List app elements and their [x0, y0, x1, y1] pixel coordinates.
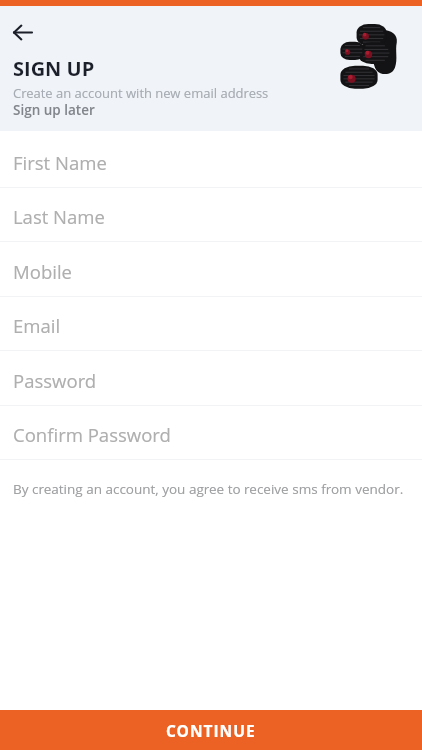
- button[interactable]: First Name: [0, 131, 422, 188]
- staticText: Password: [13, 368, 97, 393]
- staticText: Email: [13, 313, 61, 338]
- staticText: Sign up later: [13, 101, 95, 119]
- button[interactable]: Sign up later: [13, 101, 95, 119]
- button[interactable]: Last Name: [0, 188, 422, 242]
- staticText: By creating an account, you agree to rec…: [13, 480, 404, 498]
- button[interactable]: Confirm Password: [0, 406, 422, 460]
- staticText: Create an account with new email address: [13, 84, 269, 102]
- button[interactable]: Password: [0, 351, 422, 406]
- staticText: SIGN UP: [13, 55, 95, 82]
- staticText: Last Name: [13, 204, 105, 229]
- button[interactable]: Mobile: [0, 242, 422, 297]
- staticText: Mobile: [13, 259, 72, 284]
- staticText: First Name: [13, 150, 107, 175]
- staticText: Confirm Password: [13, 422, 171, 447]
- staticText: CONTINUE: [166, 720, 256, 741]
- button[interactable]: Email: [0, 297, 422, 351]
- button[interactable]: CONTINUE: [0, 710, 422, 750]
- button[interactable]: Back: [7, 17, 38, 48]
